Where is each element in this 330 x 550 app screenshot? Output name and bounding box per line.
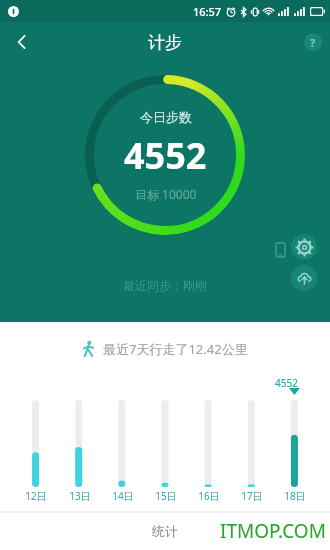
staticText: ITMOP.COM [220, 518, 326, 544]
staticText: 最近同步：刚刚 [123, 278, 207, 293]
button[interactable]: Back [0, 22, 44, 62]
staticText: 13日 [69, 489, 91, 503]
button[interactable]: 统计 [110, 512, 220, 550]
staticText: 14日 [112, 489, 134, 503]
staticText: 12日 [25, 489, 47, 503]
staticText: 计步 [148, 32, 182, 53]
staticText: 统计 [152, 523, 178, 539]
button[interactable]: Settings [291, 234, 317, 260]
button[interactable]: Help [304, 33, 322, 51]
button[interactable]: Sync [291, 265, 317, 291]
staticText: 今日步数 [140, 109, 192, 125]
staticText: 4552 [124, 131, 207, 180]
staticText: 16日 [198, 489, 220, 503]
staticText: ? [310, 35, 316, 50]
staticText: 17日 [241, 489, 263, 503]
staticText: 最近7天行走了12.42公里 [103, 340, 248, 358]
staticText: 4552 [275, 376, 298, 390]
staticText: 目标 10000 [135, 186, 197, 202]
staticText: 15日 [155, 489, 177, 503]
staticText: 16:57 [193, 4, 222, 19]
button[interactable]: Device [268, 238, 292, 262]
staticText: 18日 [284, 489, 306, 503]
